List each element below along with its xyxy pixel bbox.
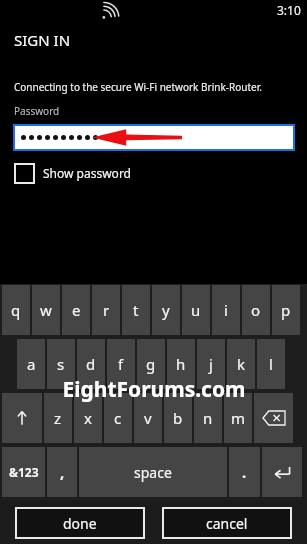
staticText: d [86, 354, 96, 374]
button[interactable]: &123 [2, 447, 45, 497]
button[interactable]: e [62, 285, 90, 335]
button[interactable]: cancel [164, 509, 290, 537]
button[interactable]: i [212, 285, 240, 335]
staticText: k [237, 354, 246, 374]
staticText: done [63, 514, 97, 533]
button[interactable]: w [32, 285, 60, 335]
staticText: a [27, 354, 36, 374]
button[interactable]: f [107, 339, 135, 389]
staticText: t [133, 300, 139, 320]
staticText: s [57, 354, 65, 374]
staticText: u [191, 300, 201, 320]
button[interactable]: b [164, 393, 192, 443]
button[interactable]: m [224, 393, 252, 443]
button[interactable]: q [2, 285, 30, 335]
button[interactable]: k [227, 339, 255, 389]
button[interactable]: h [167, 339, 195, 389]
staticText: Show password [43, 165, 131, 181]
button[interactable]: Show password [14, 160, 131, 186]
button[interactable]: g [137, 339, 165, 389]
button[interactable]: Backspace [254, 393, 293, 443]
staticText: l [269, 354, 273, 374]
button[interactable]: space [79, 447, 227, 497]
staticText: n [203, 408, 213, 428]
staticText: x [84, 408, 92, 428]
staticText: w [40, 300, 52, 320]
staticText: z [54, 408, 62, 428]
staticText: SIGN IN [14, 30, 71, 50]
staticText: 3:10 [277, 2, 301, 18]
button[interactable]: v [134, 393, 162, 443]
staticText: &123 [9, 464, 39, 480]
button[interactable]: Shift [2, 393, 42, 443]
staticText: EightForums.com [62, 375, 246, 404]
button[interactable]: t [122, 285, 150, 335]
staticText: p [281, 300, 291, 320]
staticText: b [173, 408, 183, 428]
staticText: Connecting to the secure Wi-Fi network B… [14, 80, 262, 94]
staticText: c [114, 408, 122, 428]
button[interactable]: c [104, 393, 132, 443]
staticText: f [118, 354, 124, 374]
button[interactable]: n [194, 393, 222, 443]
button[interactable]: o [242, 285, 270, 335]
button[interactable]: z [44, 393, 72, 443]
button[interactable]: Enter [262, 447, 302, 497]
staticText: g [146, 354, 156, 374]
button[interactable]: l [257, 339, 285, 389]
staticText: j [209, 354, 213, 374]
button[interactable]: done [17, 509, 143, 537]
staticText: h [176, 354, 186, 374]
staticText: o [251, 300, 261, 320]
button[interactable]: y [152, 285, 180, 335]
staticText: cancel [206, 514, 248, 533]
button[interactable]: r [92, 285, 120, 335]
staticText: . [242, 462, 247, 482]
button[interactable] [15, 126, 293, 149]
button[interactable]: x [74, 393, 102, 443]
button[interactable]: s [47, 339, 75, 389]
staticText: , [60, 462, 65, 482]
button[interactable]: . [229, 447, 260, 497]
staticText: space [134, 463, 172, 482]
staticText: m [231, 408, 246, 428]
button[interactable]: a [17, 339, 45, 389]
staticText: Password [14, 104, 60, 118]
other: Wi-Fi signal [101, 3, 119, 21]
staticText: v [144, 408, 152, 428]
button[interactable]: u [182, 285, 210, 335]
staticText: i [224, 300, 228, 320]
button[interactable]: , [47, 447, 77, 497]
staticText: e [72, 300, 81, 320]
button[interactable]: d [77, 339, 105, 389]
button[interactable]: j [197, 339, 225, 389]
staticText: r [103, 300, 110, 320]
button[interactable]: p [272, 285, 300, 335]
staticText: q [11, 300, 21, 320]
staticText: y [162, 300, 170, 320]
